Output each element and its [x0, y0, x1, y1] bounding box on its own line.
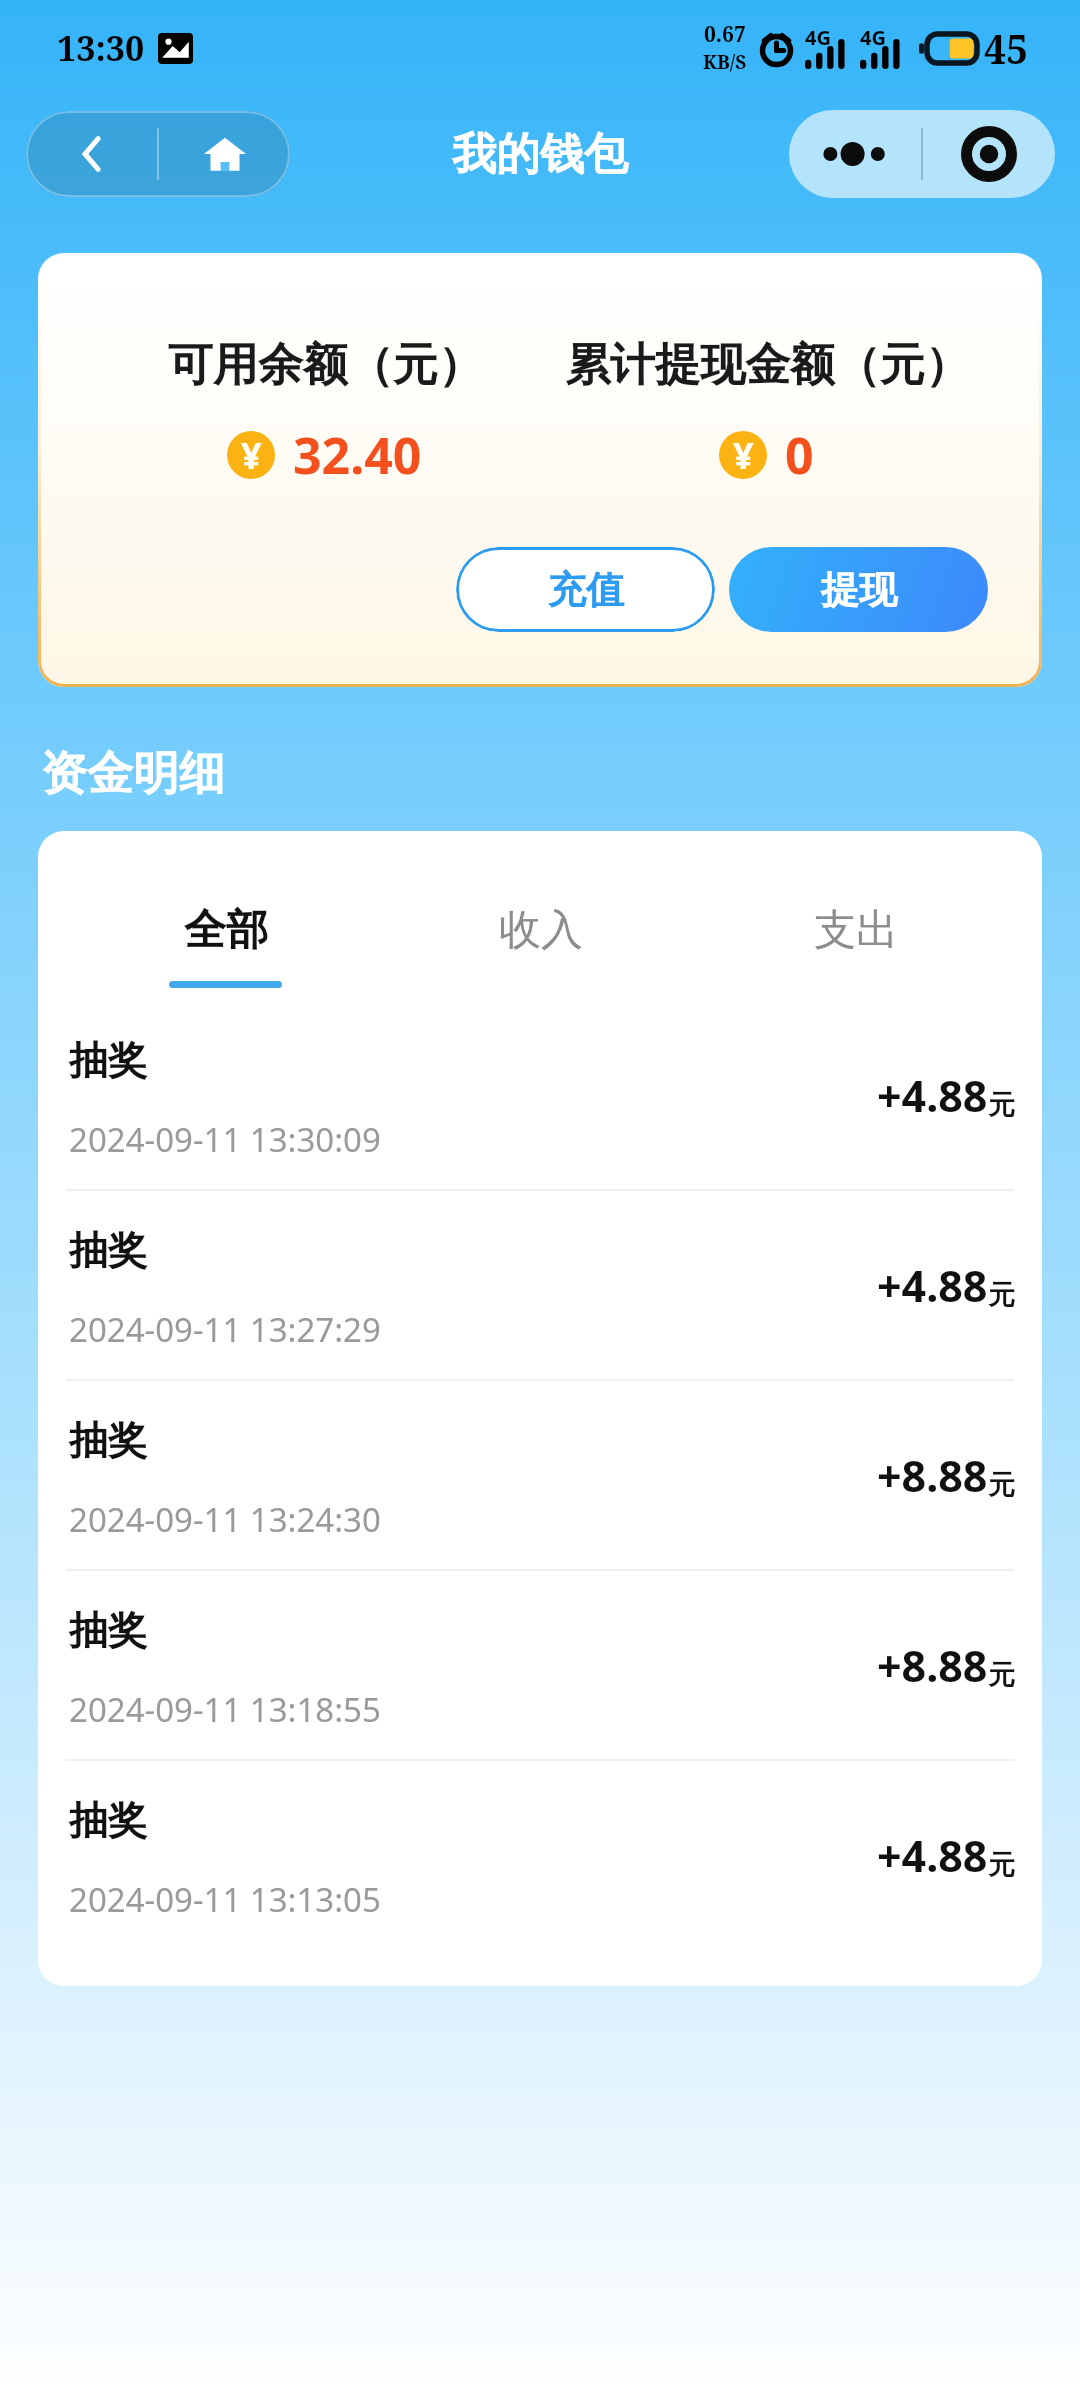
- staticText: 可用余额（元）: [168, 337, 483, 394]
- staticText: 全部: [184, 904, 268, 957]
- button[interactable]: Back: [26, 111, 157, 197]
- button[interactable]: 收入: [383, 831, 698, 1001]
- staticText: 元: [988, 1088, 1015, 1122]
- button[interactable]: 支出: [698, 831, 1013, 1001]
- button[interactable]: 全部: [67, 831, 383, 1001]
- staticText: 4G: [805, 24, 831, 51]
- staticText: 抽奖: [69, 1796, 147, 1845]
- staticText: ¥: [241, 431, 262, 479]
- staticText: +8.88: [877, 1636, 988, 1695]
- staticText: 0: [785, 421, 814, 489]
- staticText: +8.88: [877, 1446, 988, 1505]
- staticText: 32.40: [293, 421, 422, 489]
- button[interactable]: 充值: [456, 547, 715, 632]
- staticText: ¥: [733, 431, 754, 479]
- staticText: 提现: [821, 566, 897, 614]
- staticText: 充值: [548, 566, 624, 614]
- button[interactable]: 抽奖: [38, 1001, 1042, 1189]
- staticText: 元: [988, 1468, 1015, 1502]
- staticText: 收入: [499, 904, 583, 957]
- staticText: 13:30: [57, 25, 145, 71]
- staticText: 支出: [814, 904, 898, 957]
- staticText: KB/S: [703, 49, 747, 75]
- staticText: 2024-09-11 13:24:30: [69, 1497, 381, 1542]
- staticText: 元: [988, 1848, 1015, 1882]
- staticText: 累计提现金额（元）: [565, 337, 970, 394]
- staticText: 4G: [860, 24, 886, 51]
- staticText: 抽奖: [69, 1606, 147, 1655]
- staticText: +4.88: [877, 1066, 988, 1125]
- button[interactable]: 抽奖: [38, 1761, 1042, 1949]
- button[interactable]: 抽奖: [38, 1381, 1042, 1569]
- button[interactable]: 抽奖: [38, 1571, 1042, 1759]
- staticText: 2024-09-11 13:30:09: [69, 1117, 381, 1162]
- staticText: +4.88: [877, 1826, 988, 1885]
- staticText: +4.88: [877, 1256, 988, 1315]
- staticText: 2024-09-11 13:13:05: [69, 1877, 381, 1922]
- button[interactable]: Home: [159, 111, 290, 197]
- staticText: 我的钱包: [452, 127, 628, 182]
- button[interactable]: More options: [789, 110, 921, 198]
- staticText: 抽奖: [69, 1416, 147, 1465]
- staticText: 抽奖: [69, 1036, 147, 1085]
- button[interactable]: Close: [923, 110, 1055, 198]
- staticText: 2024-09-11 13:27:29: [69, 1307, 381, 1352]
- staticText: 45: [984, 22, 1029, 75]
- button[interactable]: 抽奖: [38, 1191, 1042, 1379]
- button[interactable]: 提现: [729, 547, 988, 632]
- staticText: 元: [988, 1658, 1015, 1692]
- staticText: 0.67: [704, 20, 746, 49]
- staticText: 2024-09-11 13:18:55: [69, 1687, 381, 1732]
- staticText: 资金明细: [41, 745, 225, 803]
- staticText: 元: [988, 1278, 1015, 1312]
- staticText: 抽奖: [69, 1226, 147, 1275]
